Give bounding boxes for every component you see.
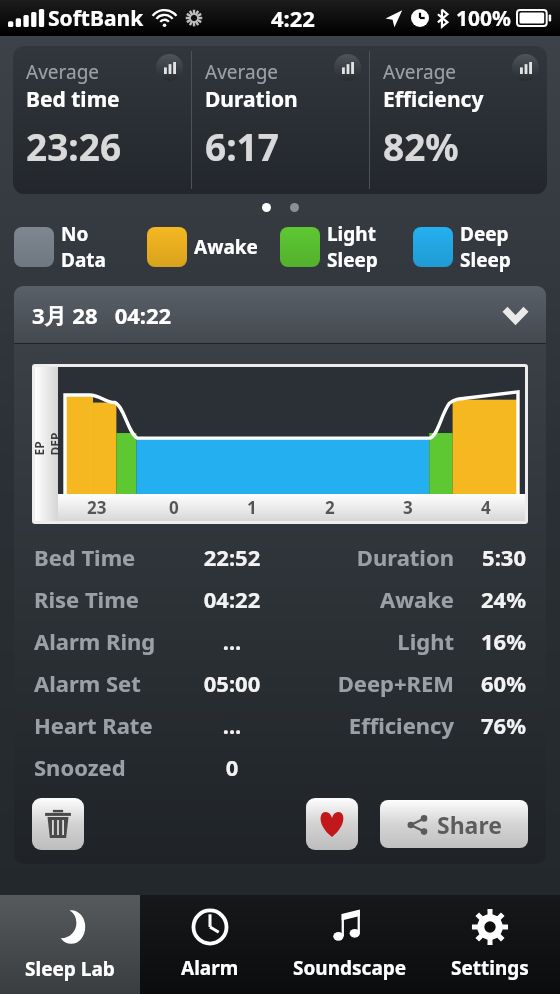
staticText: Settings [451,955,529,981]
button[interactable]: Delete [32,798,84,850]
staticText: 16% [466,626,526,656]
staticText: 22:52 [176,542,288,572]
button[interactable]: Rise Time [14,578,546,620]
button[interactable]: Soundscape [280,895,420,994]
staticText: Heart Rate [34,710,176,740]
staticText: 3月 28 04:22 [32,300,172,330]
staticText: Alarm [181,955,239,981]
staticText: Average [383,59,457,85]
staticText: 04:22 [176,584,288,614]
button[interactable]: Chart [334,54,361,81]
button[interactable]: Share [380,800,528,848]
button[interactable]: Favorite [306,798,358,850]
staticText: 05:00 [176,668,288,698]
staticText: Efficiency [288,710,454,740]
staticText: Soundscape [293,955,407,981]
staticText: 0 [176,752,288,782]
staticText: Awake [288,584,454,614]
staticText: 4 [481,496,491,519]
staticText: SoftBank [48,4,144,33]
staticText: 0 [169,496,179,519]
staticText: 4:22 [271,3,315,33]
button[interactable]: Snoozed [14,746,546,788]
staticText: 6:17 [205,121,279,171]
staticText: Average [205,59,279,85]
staticText: Average [26,59,100,85]
staticText: Rise Time [34,584,176,614]
staticText: Light [327,221,376,247]
staticText: Sleep Lab [25,956,115,982]
button[interactable]: No [14,218,147,276]
button[interactable]: 3月 28 04:22 [14,286,546,343]
staticText: No [61,221,89,247]
other: Expand [503,307,528,322]
button[interactable]: Chart [156,54,183,81]
staticText: ... [176,710,288,740]
staticText: 100% [456,4,511,33]
staticText: Efficiency [383,85,484,114]
staticText: 5:30 [466,542,526,572]
button[interactable]: Settings [420,895,560,994]
staticText: Bed time [26,85,120,114]
staticText: Sleep [327,247,378,273]
staticText: 3 [403,496,413,519]
button[interactable]: Alarm Set [14,662,546,704]
staticText: 82% [383,121,459,171]
staticText: Bed Time [34,542,176,572]
staticText: 24% [466,584,526,614]
staticText: Duration [205,85,298,114]
staticText: Deep+REM [288,668,454,698]
staticText: 23 [87,496,107,519]
button[interactable]: Deep [413,218,546,276]
staticText: Duration [288,542,454,572]
staticText: Alarm Set [34,668,176,698]
button[interactable]: Average [370,46,547,194]
button[interactable]: Chart [512,54,539,81]
button[interactable]: Average [13,46,191,194]
staticText: Sleep [460,247,511,273]
staticText: 60% [466,668,526,698]
staticText: SLEEP DEPTH [32,432,78,455]
staticText: Snoozed [34,752,176,782]
button[interactable]: Alarm [140,895,280,994]
button[interactable]: Alarm Ring [14,620,546,662]
button[interactable]: Average [192,46,369,194]
staticText: 23:26 [26,121,122,171]
staticText: Deep [460,221,509,247]
staticText: Light [288,626,454,656]
staticText: Share [437,809,502,840]
button[interactable]: Awake [147,218,280,276]
staticText: Data [61,247,106,273]
staticText: Awake [194,234,258,260]
staticText: Alarm Ring [34,626,176,656]
staticText: 2 [325,496,335,519]
button[interactable]: Bed Time [14,536,546,578]
staticText: ... [176,626,288,656]
button[interactable]: Sleep Lab [0,895,140,994]
staticText: 76% [466,710,526,740]
staticText: 1 [247,496,257,519]
button[interactable]: Heart Rate [14,704,546,746]
button[interactable]: Light [280,218,413,276]
